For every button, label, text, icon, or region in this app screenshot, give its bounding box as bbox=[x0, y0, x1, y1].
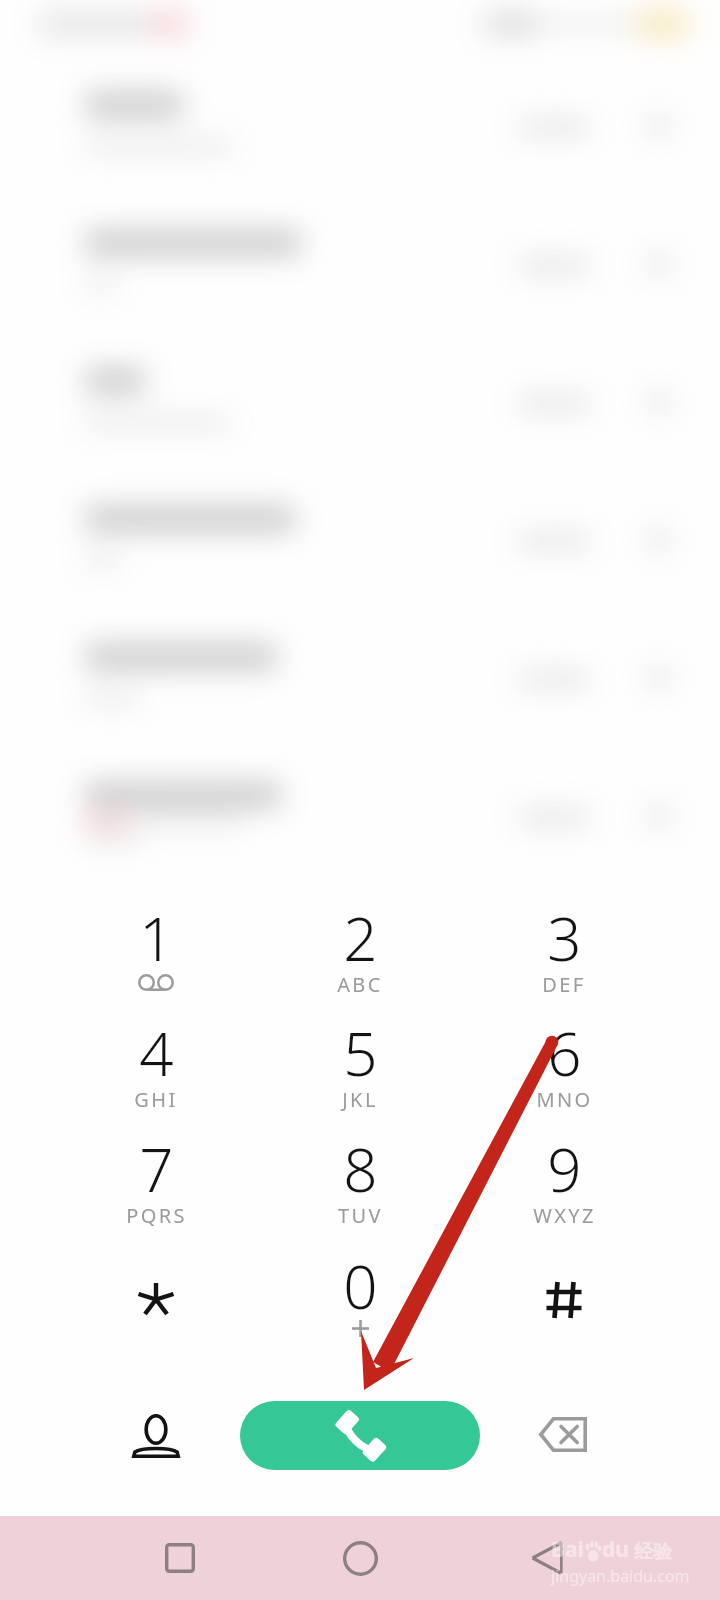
staticText: Bai bbox=[551, 1535, 584, 1564]
staticText: 1 bbox=[139, 897, 174, 973]
button[interactable]: 5 bbox=[292, 1012, 428, 1088]
button[interactable]: 7 bbox=[88, 1128, 224, 1204]
button[interactable]: 3 bbox=[496, 897, 632, 973]
button[interactable]: Home bbox=[320, 1516, 400, 1600]
staticText: du bbox=[602, 1535, 629, 1564]
staticText: 5 bbox=[343, 1012, 378, 1088]
button[interactable]: Contacts bbox=[106, 1394, 206, 1478]
staticText: 2 bbox=[343, 897, 378, 973]
button[interactable] bbox=[88, 1246, 224, 1350]
staticText: 经验 bbox=[634, 1540, 672, 1564]
button[interactable]: Back bbox=[502, 1516, 592, 1600]
button[interactable]: 1 bbox=[88, 897, 224, 973]
button[interactable]: Call bbox=[240, 1401, 480, 1470]
staticText: 6 bbox=[547, 1012, 582, 1088]
button[interactable] bbox=[496, 1248, 632, 1352]
button[interactable]: 9 bbox=[496, 1128, 632, 1204]
button[interactable]: 8 bbox=[292, 1128, 428, 1204]
staticText: 8 bbox=[343, 1128, 378, 1204]
staticText: TUV bbox=[338, 1202, 383, 1229]
staticText: 3 bbox=[547, 897, 582, 973]
staticText: 4 bbox=[139, 1012, 174, 1088]
staticText: DEF bbox=[542, 971, 586, 998]
button[interactable]: 6 bbox=[496, 1012, 632, 1088]
staticText: 9 bbox=[547, 1128, 582, 1204]
button[interactable]: 2 bbox=[292, 897, 428, 973]
staticText: 0 bbox=[343, 1245, 378, 1321]
staticText: JKL bbox=[342, 1086, 378, 1113]
staticText: PQRS bbox=[126, 1202, 187, 1229]
staticText: jingyan.baidu.com bbox=[551, 1565, 690, 1587]
staticText: MNO bbox=[536, 1086, 593, 1113]
button[interactable]: 0 bbox=[292, 1245, 428, 1321]
staticText: 7 bbox=[139, 1128, 174, 1204]
staticText: GHI bbox=[134, 1086, 178, 1113]
staticText: ABC bbox=[337, 971, 383, 998]
button[interactable]: Recents bbox=[140, 1516, 220, 1600]
button[interactable]: 4 bbox=[88, 1012, 224, 1088]
button[interactable]: Delete bbox=[514, 1393, 614, 1475]
staticText: WXYZ bbox=[533, 1202, 596, 1229]
